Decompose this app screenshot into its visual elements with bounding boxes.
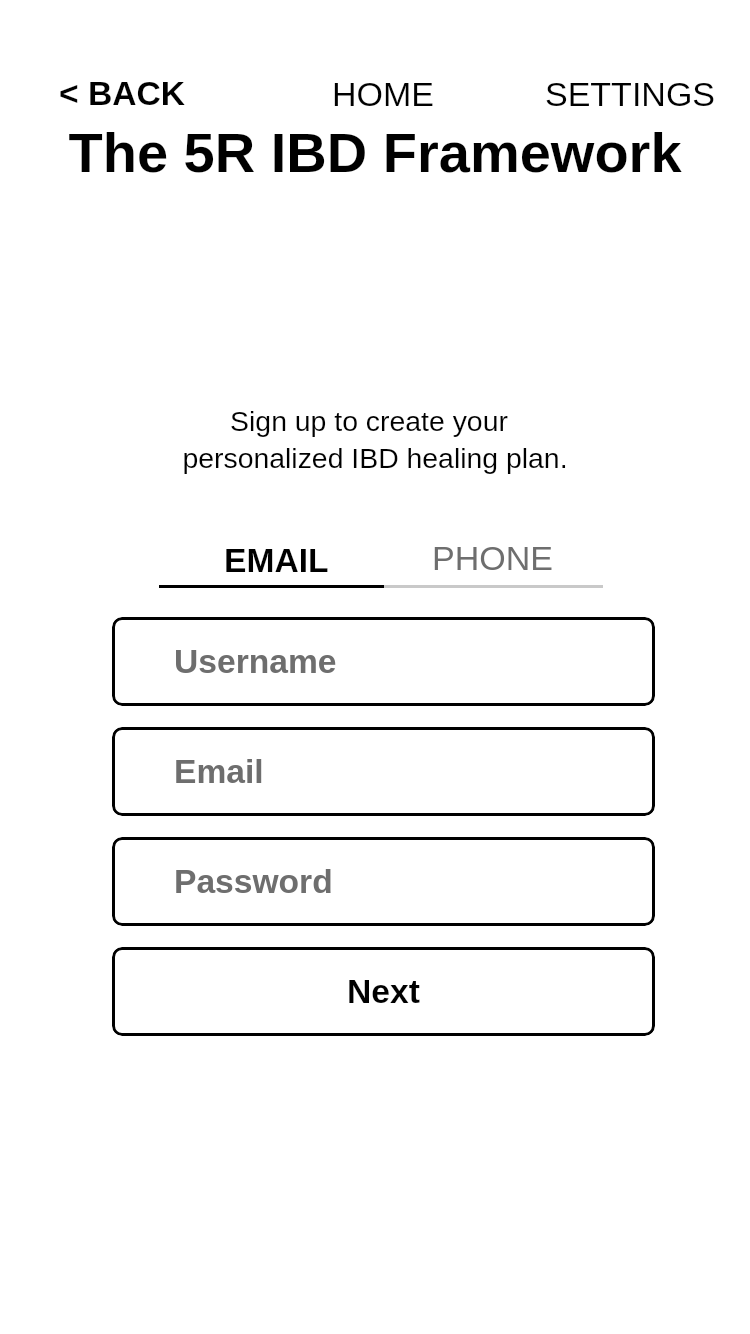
button[interactable]: SETTINGS — [539, 67, 722, 121]
button[interactable]: Username — [112, 617, 655, 706]
staticText: EMAIL — [224, 542, 329, 580]
staticText: SETTINGS — [545, 75, 716, 113]
button[interactable]: PHONE — [384, 536, 603, 588]
button[interactable]: < BACK — [53, 67, 191, 121]
staticText: Password — [174, 863, 333, 901]
staticText: Sign up to create your — [230, 405, 508, 437]
staticText: personalized IBD healing plan. — [182, 442, 568, 474]
button[interactable]: Password — [112, 837, 655, 926]
button[interactable]: HOME — [326, 67, 440, 121]
staticText: PHONE — [432, 539, 553, 577]
staticText: HOME — [332, 75, 434, 113]
button[interactable]: EMAIL — [159, 536, 384, 588]
button[interactable]: Email — [112, 727, 655, 816]
staticText: Next — [347, 973, 420, 1011]
button[interactable]: Next — [112, 947, 655, 1036]
staticText: Username — [174, 643, 337, 681]
staticText: < BACK — [59, 75, 185, 113]
staticText: Email — [174, 753, 264, 791]
staticText: The 5R IBD Framework — [68, 121, 682, 184]
